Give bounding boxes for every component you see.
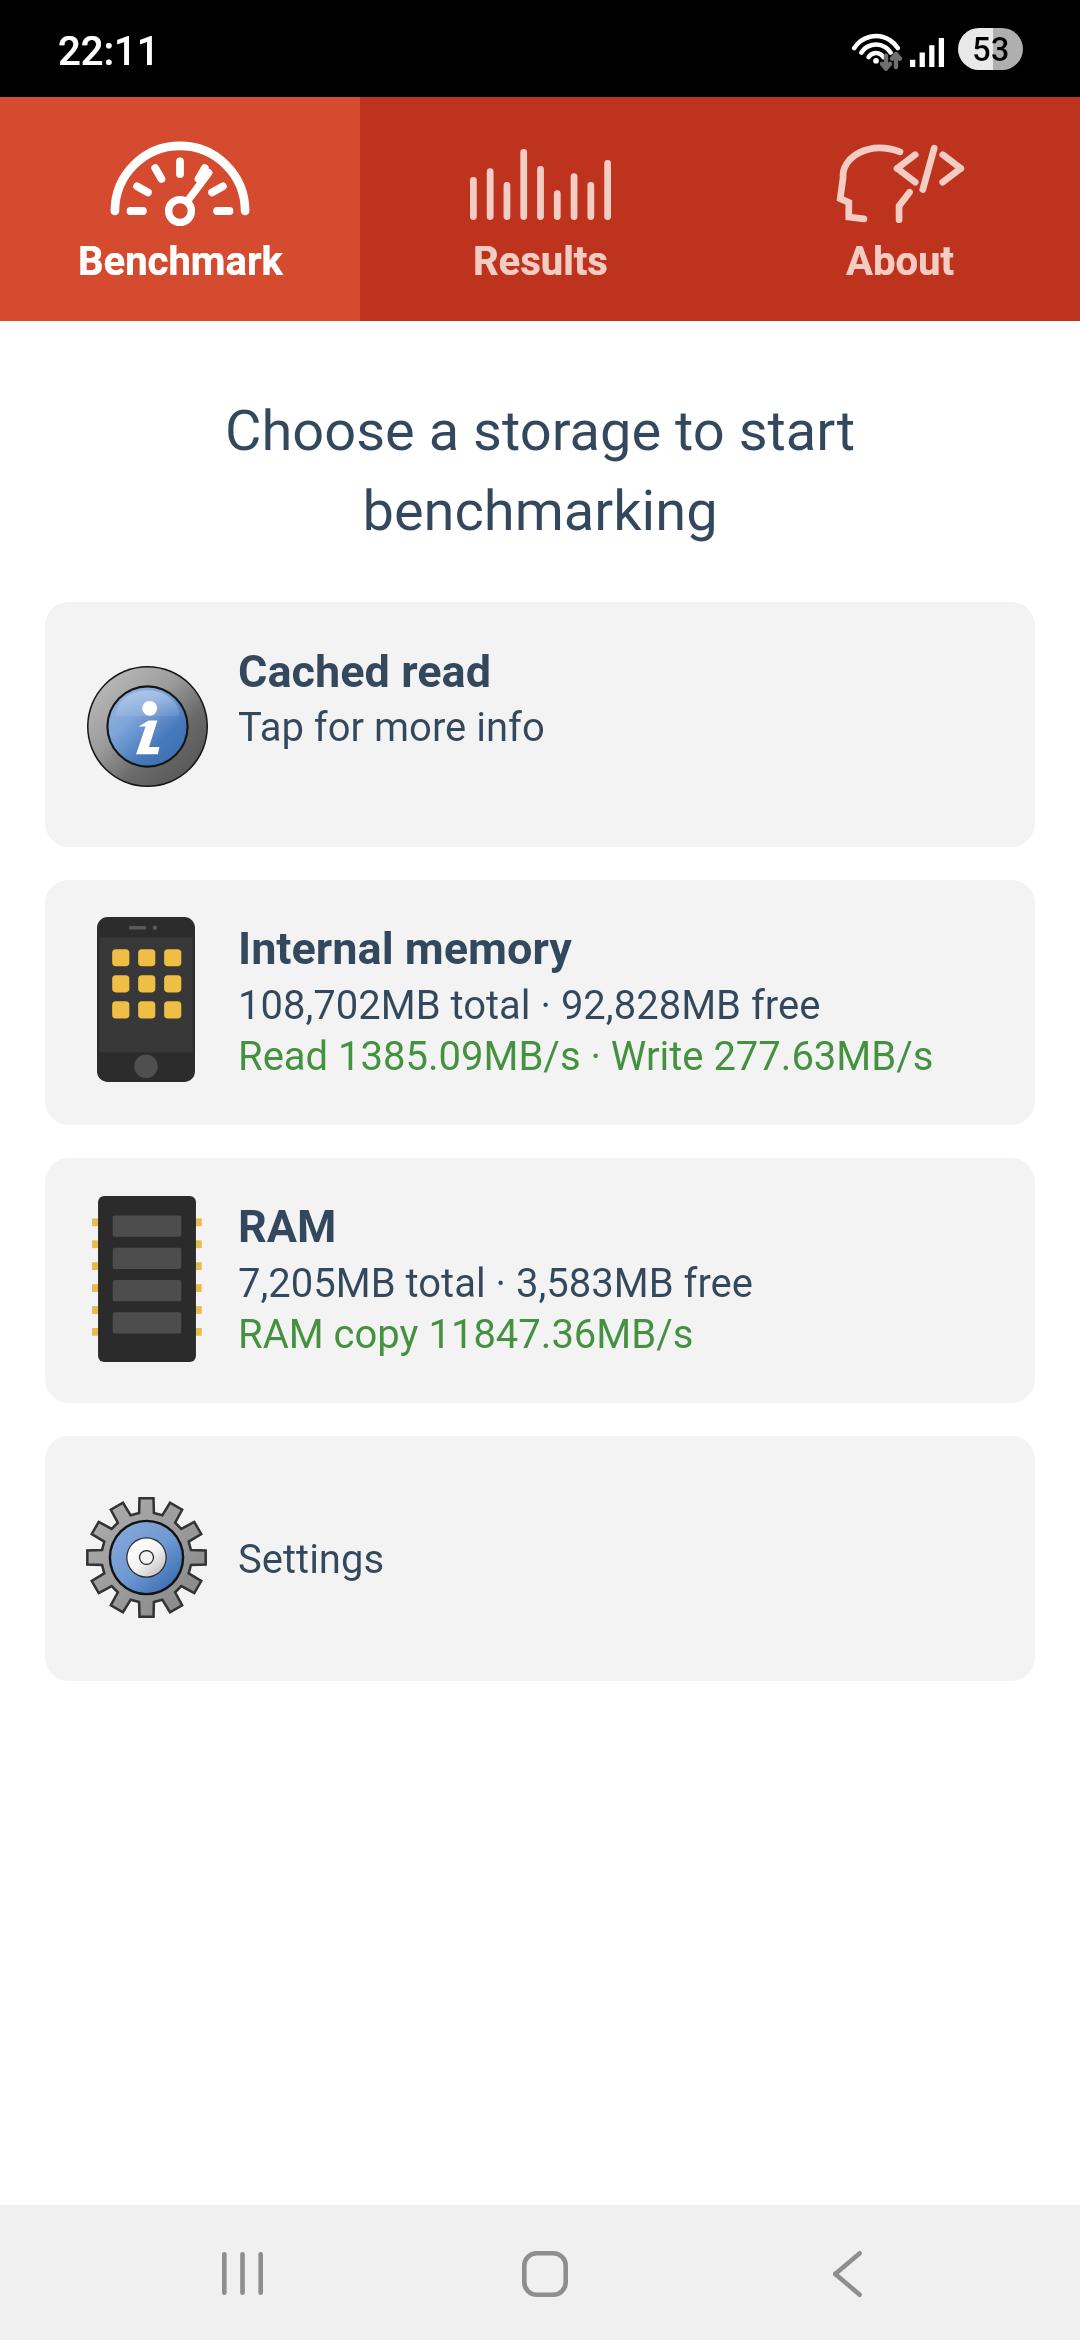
button[interactable]: Benchmark (0, 97, 360, 321)
button[interactable]: Cached read (45, 602, 1035, 847)
staticText: Cached read (238, 645, 492, 698)
button[interactable]: Results (360, 97, 720, 321)
staticText: Internal memory (238, 922, 572, 975)
button[interactable]: Recent apps (167, 2205, 317, 2340)
staticText: RAM (238, 1200, 337, 1253)
staticText: RAM copy 11847.36MB/s (238, 1311, 694, 1358)
staticText: 7,205MB total · 3,583MB free (238, 1260, 753, 1307)
staticText: 53 (972, 30, 1010, 69)
staticText: Settings (238, 1536, 385, 1583)
staticText: Results (473, 238, 608, 285)
button[interactable]: Home (470, 2205, 620, 2340)
button[interactable]: RAM (45, 1158, 1035, 1403)
staticText: 22:11 (58, 28, 160, 75)
staticText: 108,702MB total · 92,828MB free (238, 982, 821, 1029)
staticText: Benchmark (78, 238, 283, 285)
staticText: About (846, 238, 954, 285)
button[interactable]: Internal memory (45, 880, 1035, 1125)
staticText: Choose a storage to start benchmarking (115, 398, 965, 544)
button[interactable]: About (720, 97, 1080, 321)
button[interactable]: Settings (45, 1436, 1035, 1681)
button[interactable]: Back (772, 2205, 922, 2340)
staticText: Read 1385.09MB/s · Write 277.63MB/s (238, 1033, 934, 1080)
staticText: Tap for more info (238, 704, 545, 751)
